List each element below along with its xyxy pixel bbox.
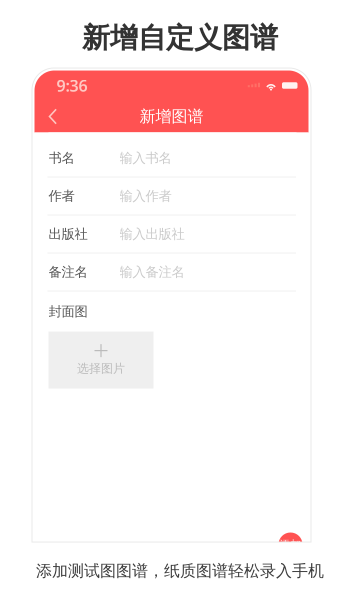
button[interactable]: 添加 [278,532,302,556]
staticText: 作者 [48,188,74,204]
staticText: 出版社 [48,226,87,242]
button[interactable]: 选择图片 [48,331,153,388]
staticText: 9:36 [56,75,87,96]
button[interactable]: 备注名 [48,253,296,291]
button[interactable]: 出版社 [48,215,296,253]
staticText: 封面图 [48,303,87,320]
button[interactable]: 作者 [48,177,296,215]
button[interactable]: 书名 [48,139,296,177]
button[interactable]: Back [34,101,68,131]
staticText: 添加 [279,538,301,551]
staticText: 新增自定义图谱 [82,21,278,55]
staticText: 新增图谱 [139,107,203,126]
staticText: 输入书名 [119,150,171,166]
staticText: 输入备注名 [119,264,184,280]
staticText: 输入作者 [119,188,171,204]
staticText: 备注名 [48,264,87,280]
staticText: 输入出版社 [119,226,184,242]
staticText: 添加测试图图谱，纸质图谱轻松录入手机 [36,561,324,581]
staticText: 书名 [48,150,74,166]
staticText: 选择图片 [77,361,125,376]
